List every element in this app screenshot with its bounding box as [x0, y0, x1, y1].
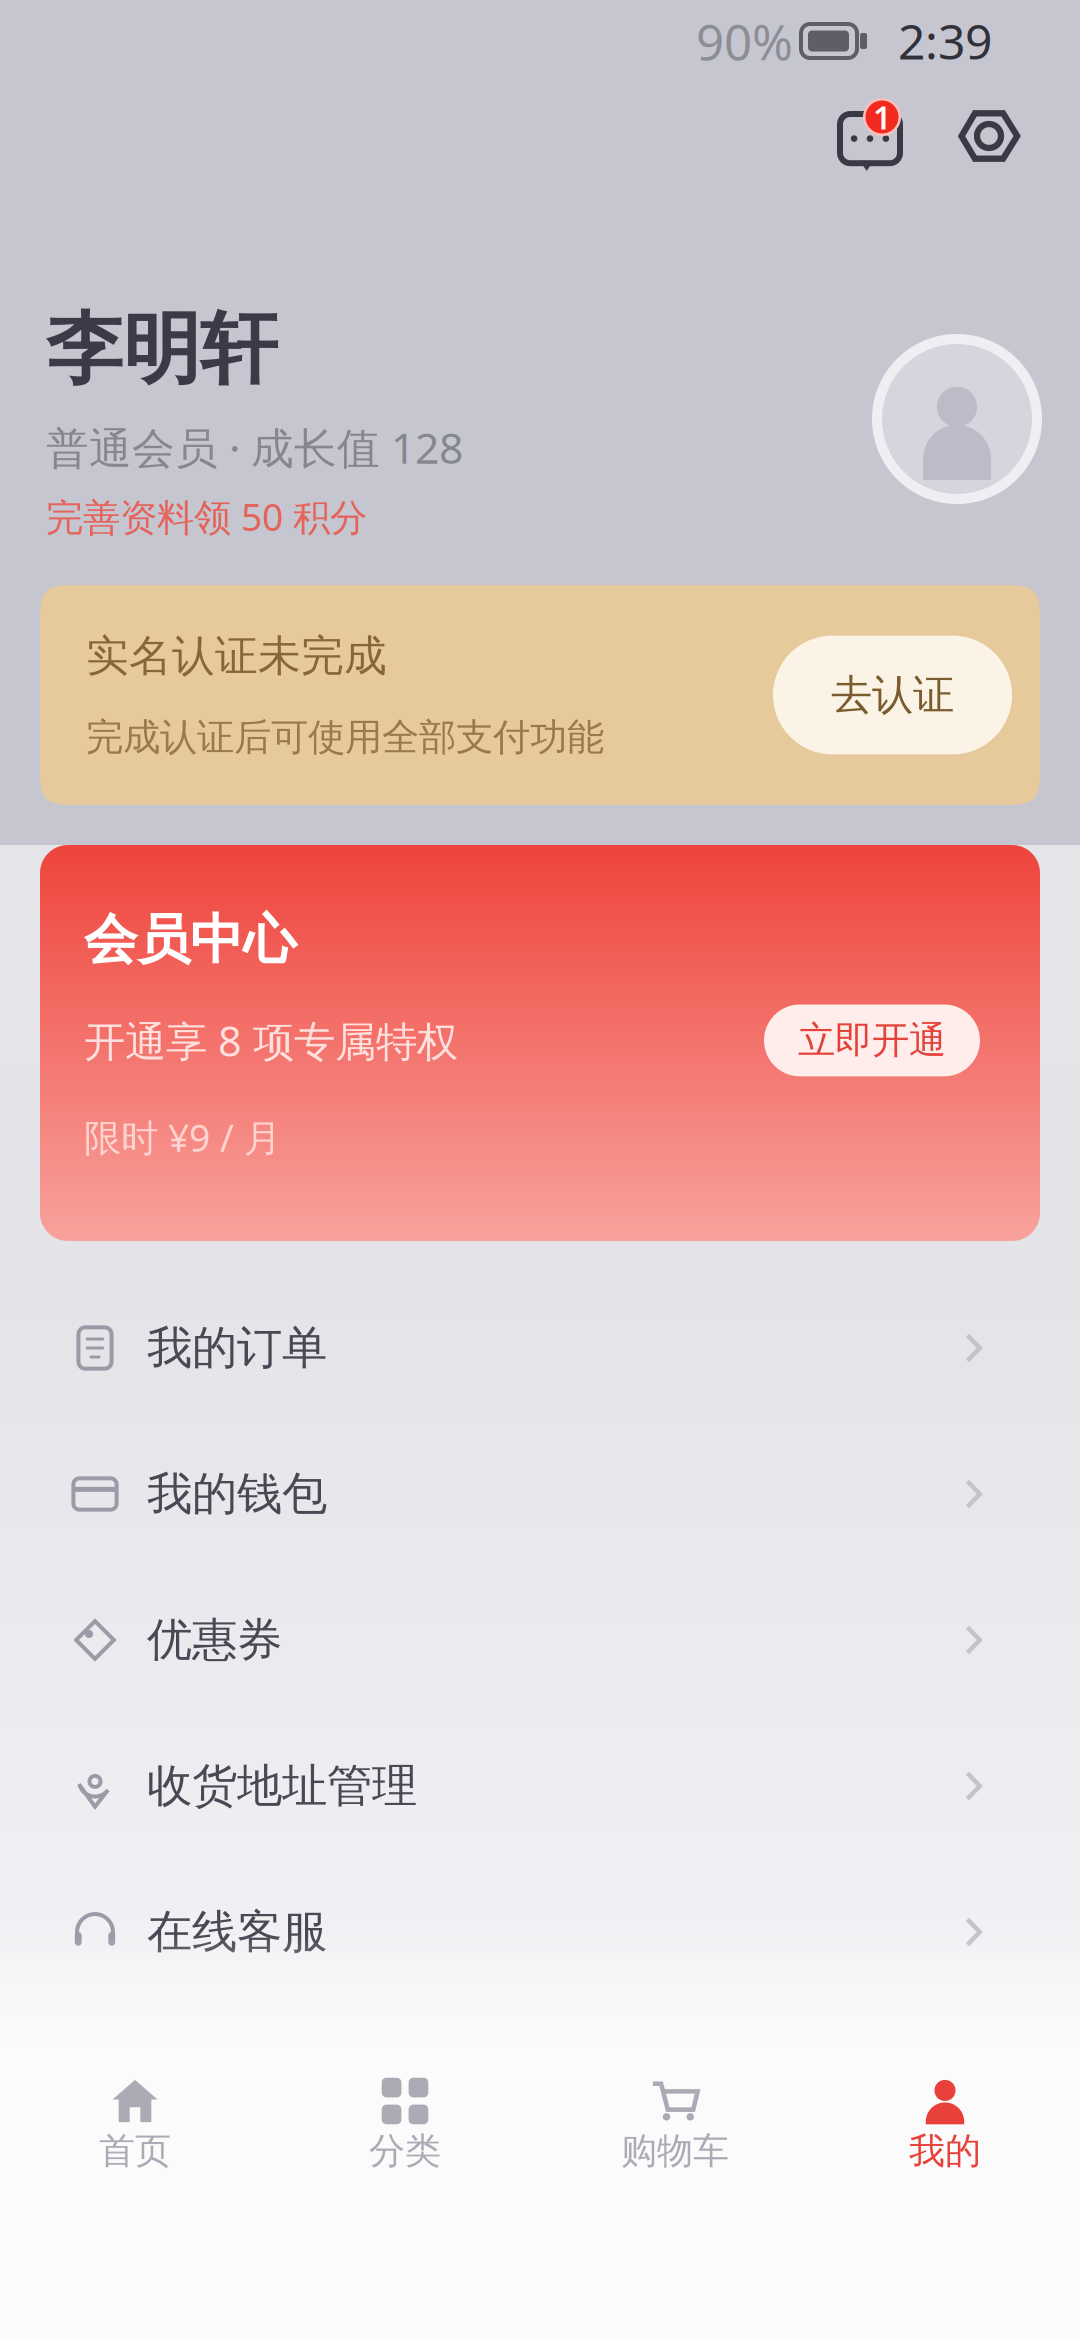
staticText: 我的钱包: [147, 1466, 327, 1522]
button[interactable]: 会员中心: [40, 845, 1040, 1241]
staticText: 立即开通: [798, 1017, 946, 1063]
staticText: 首页: [99, 2129, 171, 2173]
staticText: 完成认证后可使用全部支付功能: [86, 714, 604, 760]
staticText: 收货地址管理: [147, 1758, 417, 1814]
button[interactable]: 实名认证未完成: [40, 585, 1040, 805]
button[interactable]: Settings: [964, 97, 1046, 179]
staticText: 我的订单: [147, 1320, 327, 1376]
staticText: 实名认证未完成: [86, 630, 387, 682]
staticText: 90%: [696, 8, 793, 74]
button[interactable]: 我的钱包: [0, 1421, 1080, 1567]
staticText: 去认证: [831, 670, 954, 720]
button[interactable]: 我的: [810, 2055, 1080, 2340]
button[interactable]: 我的订单: [0, 1275, 1080, 1421]
staticText: 会员中心: [84, 907, 296, 972]
staticText: 购物车: [621, 2129, 729, 2173]
staticText: 李明轩: [46, 302, 277, 397]
button[interactable]: 首页: [0, 2055, 270, 2340]
button[interactable]: 购物车: [540, 2055, 810, 2340]
staticText: 限时 ¥9 / 月: [84, 1112, 281, 1162]
button[interactable]: 优惠券: [0, 1567, 1080, 1713]
staticText: 完善资料领 50 积分: [46, 492, 367, 541]
staticText: 普通会员 · 成长值 128: [46, 419, 463, 476]
staticText: 分类: [369, 2129, 441, 2173]
staticText: 在线客服: [147, 1904, 327, 1960]
staticText: 2:39: [898, 9, 992, 73]
button[interactable]: 在线客服: [0, 1859, 1080, 2005]
button[interactable]: 收货地址管理: [0, 1713, 1080, 1859]
staticText: 优惠券: [147, 1612, 282, 1668]
staticText: 我的: [909, 2129, 981, 2173]
button[interactable]: Messages: [826, 97, 908, 179]
button[interactable]: 分类: [270, 2055, 540, 2340]
staticText: 1: [873, 96, 891, 138]
staticText: 开通享 8 项专属特权: [84, 1013, 458, 1068]
